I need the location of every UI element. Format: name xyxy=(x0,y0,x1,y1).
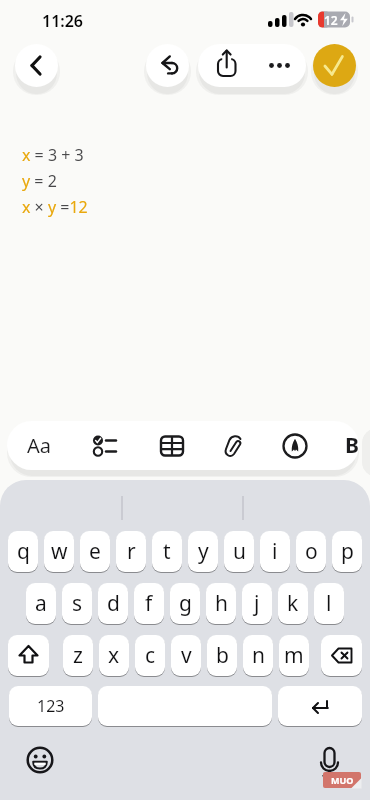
button[interactable] xyxy=(207,421,261,470)
button[interactable]: h xyxy=(206,583,236,624)
staticText: m xyxy=(284,641,304,670)
staticText: f xyxy=(145,589,153,618)
button[interactable]: q xyxy=(8,531,38,572)
staticText: k xyxy=(287,589,299,618)
button[interactable] xyxy=(310,743,350,785)
staticText: 123 xyxy=(37,695,65,717)
staticText: c xyxy=(145,641,156,670)
button[interactable]: l xyxy=(314,583,344,624)
staticText: y = 2 xyxy=(22,170,57,192)
button[interactable]: t xyxy=(152,531,182,572)
button[interactable] xyxy=(98,686,272,726)
button[interactable] xyxy=(20,740,60,780)
button[interactable]: s xyxy=(62,583,92,624)
button[interactable] xyxy=(321,635,362,676)
button[interactable]: d xyxy=(98,583,128,624)
staticText: n xyxy=(252,641,265,670)
button[interactable] xyxy=(15,44,58,87)
button[interactable] xyxy=(146,44,189,87)
button[interactable]: g xyxy=(170,583,200,624)
staticText: w xyxy=(51,537,68,566)
button[interactable]: 123 xyxy=(9,686,92,726)
staticText: t xyxy=(163,537,171,566)
button[interactable]: w xyxy=(44,531,74,572)
staticText: i xyxy=(272,537,278,566)
button[interactable]: z xyxy=(63,635,93,676)
staticText: 11:26 xyxy=(42,10,84,32)
staticText: x = 3 + 3 xyxy=(22,144,84,166)
staticText: g xyxy=(179,589,192,618)
staticText: h xyxy=(215,589,228,618)
button[interactable]: c xyxy=(135,635,165,676)
staticText: e xyxy=(89,537,101,566)
staticText: s xyxy=(72,589,83,618)
button[interactable]: r xyxy=(116,531,146,572)
button[interactable] xyxy=(278,686,362,726)
staticText: r xyxy=(127,537,136,566)
button[interactable]: b xyxy=(207,635,237,676)
button[interactable] xyxy=(252,44,306,87)
button[interactable]: u xyxy=(224,531,254,572)
staticText: j xyxy=(254,589,260,618)
button[interactable]: o xyxy=(296,531,326,572)
staticText: y xyxy=(198,537,209,566)
button[interactable]: a xyxy=(26,583,56,624)
button[interactable]: j xyxy=(242,583,272,624)
button[interactable]: B xyxy=(341,421,359,470)
staticText: q xyxy=(17,537,30,566)
staticText: l xyxy=(326,589,332,618)
staticText: p xyxy=(341,537,354,566)
staticText: MUO xyxy=(331,774,354,786)
button[interactable]: Aa xyxy=(12,421,66,470)
button[interactable] xyxy=(78,421,132,470)
button[interactable]: v xyxy=(171,635,201,676)
button[interactable]: y xyxy=(188,531,218,572)
button[interactable]: p xyxy=(332,531,362,572)
staticText: d xyxy=(107,589,120,618)
staticText: 12 xyxy=(324,12,338,28)
staticText: x xyxy=(108,641,120,670)
staticText: Aa xyxy=(27,432,51,459)
button[interactable]: m xyxy=(279,635,309,676)
button[interactable]: e xyxy=(80,531,110,572)
staticText: v xyxy=(181,641,192,670)
button[interactable]: f xyxy=(134,583,164,624)
staticText: B xyxy=(345,431,359,460)
staticText: u xyxy=(233,537,246,566)
button[interactable]: i xyxy=(260,531,290,572)
button[interactable] xyxy=(268,421,322,470)
staticText: o xyxy=(305,537,318,566)
button[interactable] xyxy=(145,421,199,470)
button[interactable]: x xyxy=(99,635,129,676)
button[interactable] xyxy=(313,44,356,87)
staticText: b xyxy=(216,641,229,670)
staticText: z xyxy=(73,641,83,670)
button[interactable]: n xyxy=(243,635,273,676)
staticText: a xyxy=(35,589,47,618)
button[interactable]: k xyxy=(278,583,308,624)
staticText: x × y =12 xyxy=(22,196,88,218)
button[interactable] xyxy=(8,635,49,676)
button[interactable] xyxy=(198,44,252,87)
